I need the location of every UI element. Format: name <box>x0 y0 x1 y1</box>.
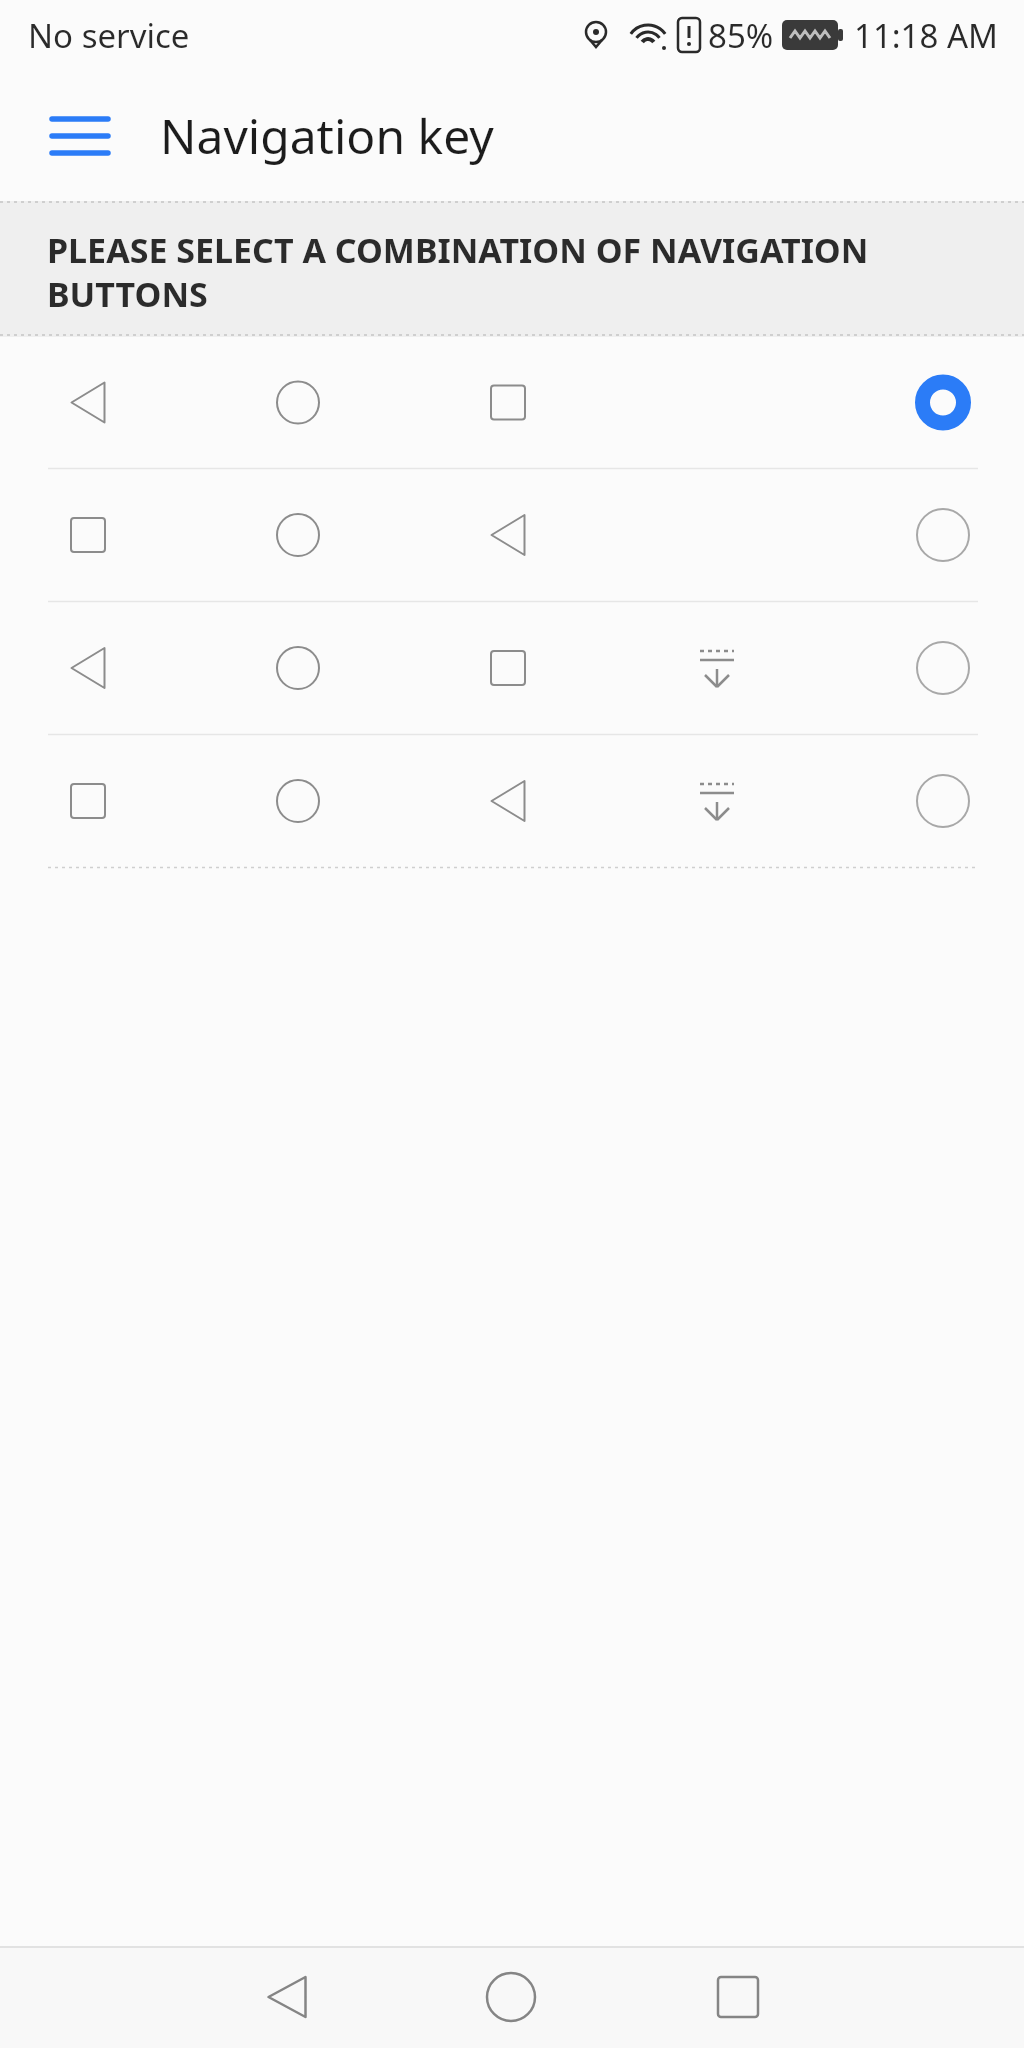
staticText: PLEASE SELECT A COMBINATION OF NAVIGATIO… <box>47 227 869 317</box>
staticText: Navigation key <box>160 103 494 168</box>
button[interactable] <box>417 1946 605 2048</box>
button[interactable] <box>36 92 124 180</box>
staticText: 85% <box>708 13 774 58</box>
button[interactable] <box>0 469 1024 601</box>
staticText: 11:18 AM <box>854 13 998 58</box>
button[interactable] <box>0 602 1024 734</box>
button[interactable] <box>0 735 1024 867</box>
button[interactable] <box>644 1946 832 2048</box>
staticText: No service <box>28 13 190 58</box>
button[interactable] <box>0 337 1024 468</box>
button[interactable] <box>191 1946 379 2048</box>
